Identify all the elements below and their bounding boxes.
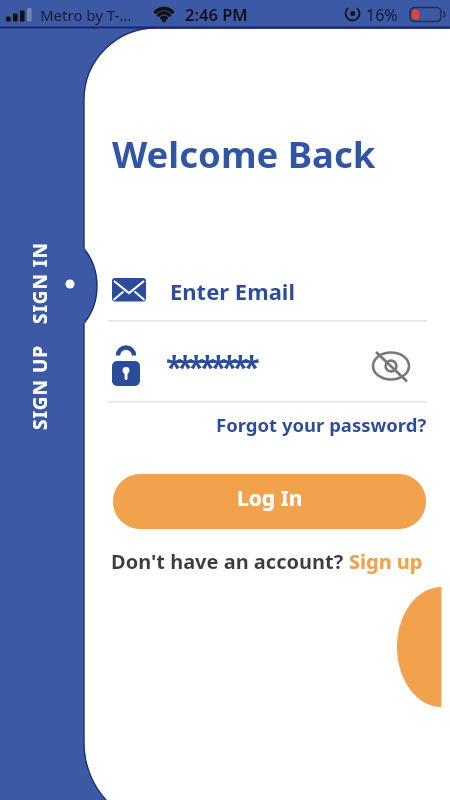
staticText: SIGN UP	[27, 344, 53, 430]
button[interactable]: SIGN UP	[0, 327, 100, 447]
staticText: SIGN IN	[27, 242, 53, 324]
staticText: Don't have an account?	[111, 548, 349, 575]
button[interactable]: Sign up	[349, 548, 423, 575]
staticText: Log In	[237, 484, 303, 513]
button[interactable]: Log In	[113, 474, 426, 529]
staticText: Enter Email	[170, 276, 295, 306]
button[interactable]: SIGN IN	[0, 223, 100, 343]
staticText: 2:46 PM	[185, 3, 248, 25]
button[interactable]: ********	[108, 345, 428, 399]
button[interactable]: Forgot your password?	[216, 412, 427, 437]
staticText: 16%	[366, 4, 398, 26]
staticText: Metro by T-...	[40, 5, 132, 25]
staticText: Welcome Back	[112, 129, 376, 179]
staticText: ********	[166, 346, 255, 387]
button[interactable]: Enter Email	[108, 268, 428, 318]
